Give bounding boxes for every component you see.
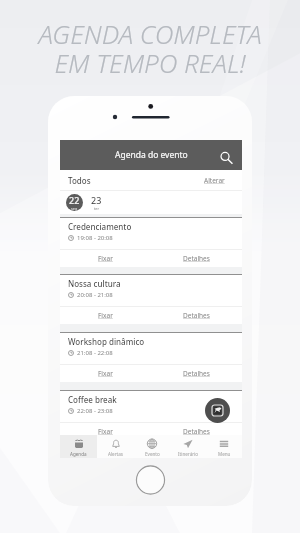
button[interactable]: Detalhes (151, 250, 242, 267)
staticText: 22 (69, 194, 80, 206)
button[interactable]: Detalhes (151, 423, 242, 440)
button[interactable]: Itinerário (170, 435, 206, 458)
button[interactable]: Fixar (60, 365, 151, 382)
button[interactable]: Pesquisar (215, 147, 237, 169)
staticText: Detalhes (183, 427, 210, 436)
staticText: Alertas (108, 451, 124, 457)
button[interactable]: Fixar (60, 250, 151, 267)
button[interactable]: Coffee break (60, 390, 242, 440)
staticText: Credenciamento (68, 221, 132, 232)
staticText: Evento (145, 451, 160, 457)
staticText: 23 (91, 194, 102, 206)
staticText: Menu (218, 451, 231, 457)
staticText: Nossa cultura (68, 278, 121, 289)
staticText: 19:08 - 20:08 (77, 234, 113, 242)
staticText: Todos (68, 175, 91, 186)
button[interactable]: Credenciamento (60, 217, 242, 267)
staticText: 21:08 - 22:08 (77, 349, 113, 357)
button[interactable]: Detalhes (151, 307, 242, 324)
staticText: Workshop dinâmico (68, 336, 145, 347)
button[interactable]: Evento (134, 435, 170, 458)
staticText: Agenda (70, 451, 87, 457)
button[interactable]: Alertas (97, 435, 134, 458)
staticText: Fixar (98, 254, 113, 263)
button[interactable]: Alterar (204, 176, 225, 185)
staticText: Fixar (98, 369, 113, 378)
staticText: AGENDA COMPLETA EM TEMPO REAL! (38, 16, 262, 80)
staticText: Fixar (98, 427, 113, 436)
button[interactable]: 22 (66, 194, 83, 211)
button[interactable]: Workshop dinâmico (60, 332, 242, 382)
staticText: Detalhes (183, 311, 210, 320)
staticText: 22:08 - 23:08 (77, 407, 113, 415)
button[interactable]: Menu (206, 435, 242, 458)
button[interactable]: 23 (88, 194, 105, 211)
button[interactable]: Detalhes (151, 365, 242, 382)
staticText: Detalhes (183, 369, 210, 378)
button[interactable]: Nossa cultura (60, 274, 242, 324)
button[interactable]: Fixar (60, 307, 151, 324)
button[interactable]: Agenda (60, 435, 97, 458)
staticText: Fixar (98, 311, 113, 320)
staticText: seg (71, 206, 78, 211)
staticText: ter (94, 206, 100, 211)
staticText: 20:08 - 21:08 (77, 291, 113, 299)
staticText: Coffee break (68, 394, 117, 405)
staticText: Alterar (204, 176, 225, 185)
button[interactable]: Fixar evento (205, 398, 230, 423)
staticText: Itinerário (178, 451, 199, 457)
staticText: Detalhes (183, 254, 210, 263)
button[interactable]: Fixar (60, 423, 151, 440)
staticText: Agenda do evento (115, 149, 188, 161)
